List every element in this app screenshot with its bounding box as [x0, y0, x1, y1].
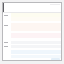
button[interactable]	[2, 31, 62, 33]
button[interactable]	[2, 13, 62, 17]
button[interactable]	[2, 21, 62, 23]
button[interactable]	[2, 48, 62, 50]
button[interactable]	[2, 38, 62, 41]
button[interactable]	[2, 33, 62, 38]
button[interactable]	[2, 50, 62, 54]
button[interactable]	[2, 45, 62, 48]
button[interactable]	[2, 17, 62, 21]
button[interactable]: Action	[51, 58, 60, 61]
button[interactable]	[2, 27, 62, 31]
button[interactable]	[2, 55, 62, 58]
button[interactable]	[2, 54, 62, 55]
button[interactable]	[2, 23, 62, 27]
button[interactable]	[2, 44, 62, 45]
button[interactable]: Header	[2, 2, 62, 12]
button[interactable]	[2, 41, 62, 44]
